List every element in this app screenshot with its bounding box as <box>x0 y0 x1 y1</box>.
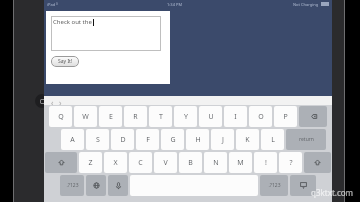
staticText: Q <box>58 112 64 122</box>
staticText: .?123 <box>66 182 79 189</box>
staticText: H <box>195 135 201 145</box>
staticText: S <box>96 135 100 145</box>
button[interactable]: Q <box>49 106 72 127</box>
button[interactable]: Emoji keyboard <box>86 175 106 196</box>
staticText: L <box>271 135 275 145</box>
staticText: › <box>59 97 62 105</box>
button[interactable]: Previous field <box>48 97 56 105</box>
staticText: X <box>113 158 118 168</box>
staticText: ? <box>289 158 293 168</box>
staticText: V <box>163 158 168 168</box>
button[interactable]: D <box>111 129 134 150</box>
button[interactable]: A <box>61 129 84 150</box>
staticText: G <box>170 135 176 145</box>
staticText: D <box>120 135 126 145</box>
button[interactable]: M <box>229 152 252 173</box>
staticText: I <box>234 112 237 122</box>
button[interactable]: .?123 <box>60 175 84 196</box>
staticText: P <box>283 112 288 122</box>
staticText: M <box>237 158 244 168</box>
button[interactable]: G <box>161 129 184 150</box>
staticText: R <box>133 112 138 122</box>
button[interactable]: Backspace <box>299 106 327 127</box>
button[interactable]: I <box>224 106 247 127</box>
button[interactable]: Z <box>79 152 102 173</box>
button[interactable]: J <box>211 129 234 150</box>
button[interactable]: O <box>249 106 272 127</box>
staticText: ! <box>265 158 267 168</box>
staticText: C <box>138 158 143 168</box>
button[interactable]: Hide keyboard <box>290 175 316 196</box>
button[interactable]: Dictation <box>108 175 128 196</box>
button[interactable]: T <box>149 106 172 127</box>
staticText: ‹ <box>51 97 54 105</box>
button[interactable]: return <box>286 129 326 150</box>
staticText: .?123 <box>268 182 281 189</box>
button[interactable]: N <box>204 152 227 173</box>
button[interactable]: Next field <box>56 97 64 105</box>
staticText: K <box>245 135 250 145</box>
button[interactable]: Say It! <box>51 56 79 67</box>
button[interactable]: U <box>199 106 222 127</box>
staticText: Z <box>88 158 93 168</box>
staticText: 1:34 PM <box>167 2 183 7</box>
staticText: Y <box>184 112 188 122</box>
staticText: iPad ᵟ <box>47 2 58 7</box>
button[interactable]: F <box>136 129 159 150</box>
staticText: Not Charging <box>293 2 319 7</box>
button[interactable]: ? <box>279 152 302 173</box>
staticText: return <box>299 136 314 143</box>
button[interactable]: Check out the <box>51 16 161 51</box>
button[interactable]: .?123 <box>260 175 288 196</box>
staticText: O <box>258 112 264 122</box>
button[interactable]: ! <box>254 152 277 173</box>
button[interactable]: Y <box>174 106 197 127</box>
button[interactable]: B <box>179 152 202 173</box>
staticText: Say It! <box>58 58 73 65</box>
button[interactable]: K <box>236 129 259 150</box>
staticText: B <box>188 158 193 168</box>
staticText: E <box>109 112 113 122</box>
staticText: A <box>70 135 75 145</box>
staticText: U <box>208 112 214 122</box>
button[interactable]: X <box>104 152 127 173</box>
staticText: F <box>146 135 150 145</box>
button[interactable]: L <box>261 129 284 150</box>
button[interactable]: P <box>274 106 297 127</box>
staticText: J <box>222 135 224 145</box>
button[interactable]: Home <box>35 94 49 108</box>
staticText: q3ktxt.com <box>311 187 354 198</box>
button[interactable]: E <box>99 106 122 127</box>
button[interactable]: S <box>86 129 109 150</box>
button[interactable]: W <box>74 106 97 127</box>
button[interactable]: Shift <box>304 152 331 173</box>
button[interactable]: Shift <box>45 152 77 173</box>
button[interactable]: H <box>186 129 209 150</box>
button[interactable]: V <box>154 152 177 173</box>
button[interactable]: R <box>124 106 147 127</box>
staticText: W <box>82 112 89 122</box>
staticText: N <box>213 158 219 168</box>
staticText: T <box>159 112 163 122</box>
staticText: Check out the <box>53 18 92 26</box>
button[interactable]: C <box>129 152 152 173</box>
